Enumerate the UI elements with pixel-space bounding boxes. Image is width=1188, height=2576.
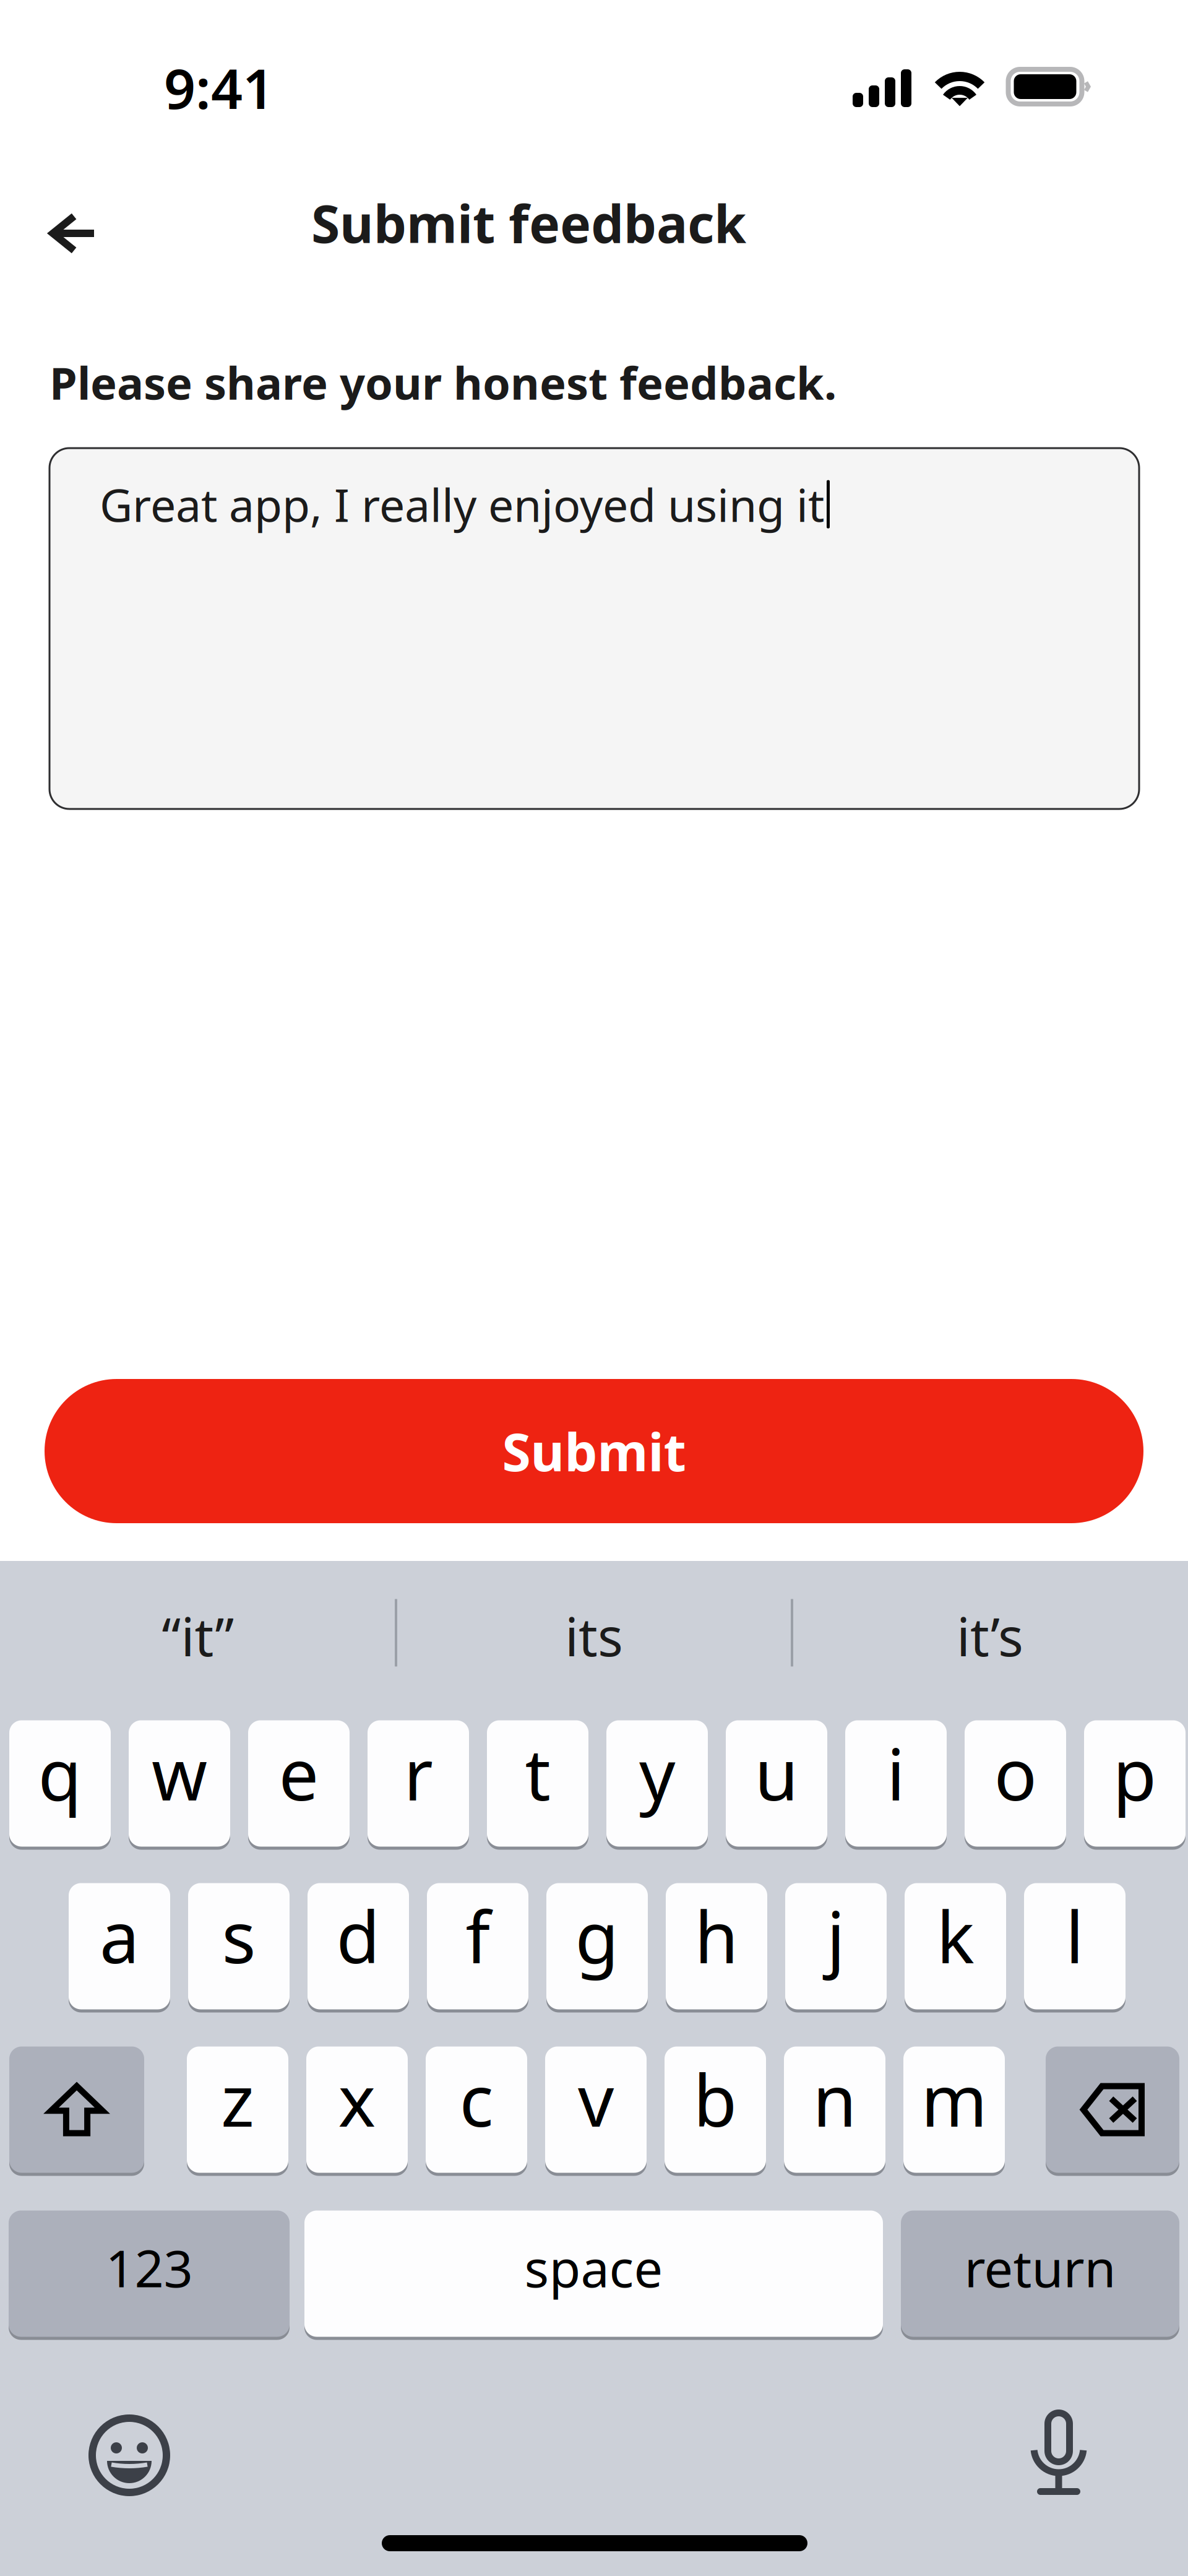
staticText: it’s bbox=[957, 1601, 1023, 1671]
button[interactable]: u bbox=[726, 1719, 827, 1848]
button[interactable]: w bbox=[129, 1719, 230, 1848]
staticText: n bbox=[813, 2052, 857, 2146]
staticText: space bbox=[524, 2233, 663, 2301]
button[interactable]: space bbox=[304, 2209, 883, 2338]
button[interactable]: return bbox=[901, 2209, 1179, 2338]
button[interactable]: r bbox=[368, 1719, 469, 1848]
button[interactable]: v bbox=[545, 2045, 647, 2174]
staticText: z bbox=[221, 2052, 254, 2146]
staticText: return bbox=[964, 2233, 1116, 2301]
staticText: i bbox=[887, 1726, 905, 1820]
staticText: m bbox=[921, 2052, 987, 2146]
button[interactable]: “it” bbox=[1, 1586, 395, 1679]
staticText: Submit bbox=[502, 1417, 686, 1486]
staticText: o bbox=[994, 1726, 1037, 1820]
staticText: “it” bbox=[162, 1601, 234, 1671]
button[interactable]: Back bbox=[24, 193, 123, 274]
button[interactable]: e bbox=[248, 1719, 350, 1848]
staticText: p bbox=[1113, 1726, 1157, 1820]
button[interactable]: n bbox=[784, 2045, 885, 2174]
button[interactable]: f bbox=[427, 1882, 528, 2011]
button[interactable]: t bbox=[487, 1719, 588, 1848]
staticText: l bbox=[1065, 1889, 1084, 1983]
button[interactable]: c bbox=[426, 2045, 527, 2174]
staticText: Great app, I really enjoyed using it bbox=[100, 474, 824, 534]
staticText: x bbox=[338, 2052, 376, 2146]
button[interactable]: 123 bbox=[9, 2209, 290, 2338]
button[interactable]: a bbox=[69, 1882, 170, 2011]
staticText: v bbox=[578, 2052, 614, 2146]
staticText: Submit feedback bbox=[311, 188, 746, 257]
button[interactable]: i bbox=[845, 1719, 947, 1848]
button[interactable]: Delete bbox=[1046, 2045, 1179, 2174]
staticText: u bbox=[755, 1726, 798, 1820]
button[interactable]: g bbox=[546, 1882, 648, 2011]
staticText: its bbox=[565, 1601, 623, 1671]
button[interactable]: l bbox=[1024, 1882, 1126, 2011]
button[interactable]: Dictation bbox=[1030, 2410, 1087, 2495]
staticText: w bbox=[152, 1726, 207, 1820]
staticText: e bbox=[279, 1726, 319, 1820]
staticText: 9:41 bbox=[164, 51, 274, 124]
staticText: f bbox=[466, 1889, 490, 1983]
staticText: q bbox=[38, 1726, 82, 1820]
button[interactable]: s bbox=[188, 1882, 290, 2011]
button[interactable]: q bbox=[9, 1719, 111, 1848]
button[interactable]: it’s bbox=[793, 1586, 1187, 1679]
staticText: d bbox=[336, 1889, 380, 1983]
button[interactable]: its bbox=[397, 1586, 791, 1679]
button[interactable]: y bbox=[606, 1719, 708, 1848]
button[interactable]: h bbox=[666, 1882, 767, 2011]
staticText: c bbox=[459, 2052, 493, 2146]
staticText: 123 bbox=[105, 2233, 193, 2301]
staticText: a bbox=[100, 1889, 139, 1983]
button[interactable]: p bbox=[1084, 1719, 1186, 1848]
button[interactable]: k bbox=[905, 1882, 1006, 2011]
button[interactable]: x bbox=[306, 2045, 408, 2174]
button[interactable]: o bbox=[965, 1719, 1066, 1848]
button[interactable]: Submit bbox=[45, 1379, 1143, 1523]
button[interactable]: j bbox=[785, 1882, 887, 2011]
staticText: k bbox=[936, 1889, 974, 1983]
button[interactable]: Emoji keyboard bbox=[88, 2414, 170, 2496]
staticText: s bbox=[222, 1889, 256, 1983]
staticText: Please share your honest feedback. bbox=[49, 353, 837, 412]
button[interactable]: z bbox=[187, 2045, 288, 2174]
button[interactable]: b bbox=[665, 2045, 766, 2174]
staticText: g bbox=[575, 1889, 619, 1983]
button[interactable]: Shift bbox=[9, 2045, 144, 2174]
button[interactable]: d bbox=[308, 1882, 409, 2011]
staticText: j bbox=[827, 1889, 845, 1983]
button[interactable]: m bbox=[903, 2045, 1005, 2174]
staticText: h bbox=[695, 1889, 738, 1983]
button[interactable]: Great app, I really enjoyed using it bbox=[49, 448, 1139, 809]
staticText: r bbox=[404, 1726, 433, 1820]
staticText: t bbox=[525, 1726, 550, 1820]
staticText: y bbox=[639, 1726, 675, 1820]
staticText: b bbox=[693, 2052, 737, 2146]
